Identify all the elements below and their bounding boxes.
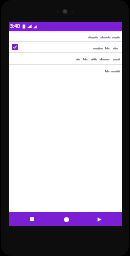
button[interactable]: Toggle option (9, 42, 122, 52)
button[interactable] (9, 53, 122, 64)
staticText: 3:40 (10, 23, 20, 30)
button[interactable]: Back (89, 212, 109, 226)
button[interactable]: Toggle option (12, 44, 18, 50)
button[interactable]: Home (56, 212, 76, 226)
button[interactable] (9, 65, 122, 75)
button[interactable]: Recent apps (22, 212, 42, 226)
button[interactable] (9, 32, 122, 41)
